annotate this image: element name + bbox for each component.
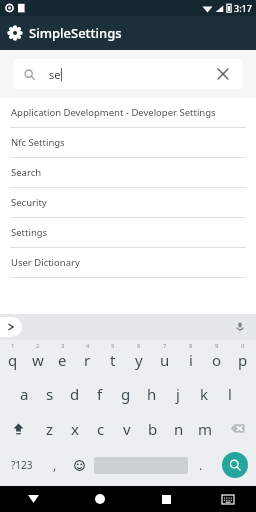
- button[interactable]: Search: [213, 446, 256, 484]
- button[interactable]: j: [165, 376, 191, 411]
- staticText: 5: [111, 342, 115, 350]
- staticText: 0: [241, 342, 245, 350]
- staticText: 4: [86, 342, 90, 350]
- button[interactable]: l: [217, 376, 243, 411]
- staticText: p: [238, 350, 248, 370]
- staticText: u: [160, 350, 170, 370]
- button[interactable]: Home: [67, 486, 133, 512]
- other: Search: [24, 69, 35, 80]
- button[interactable]: Shift: [0, 411, 37, 446]
- staticText: j: [176, 384, 180, 404]
- button[interactable]: User Dictionary: [0, 248, 256, 277]
- button[interactable]: Nfc Settings: [0, 128, 256, 157]
- staticText: 3: [61, 342, 65, 350]
- button[interactable]: Recents: [133, 486, 199, 512]
- staticText: 6: [137, 342, 141, 350]
- button[interactable]: 2: [25, 340, 50, 376]
- staticText: 8: [189, 342, 193, 350]
- button[interactable]: 1: [0, 340, 25, 376]
- staticText: e: [58, 350, 67, 370]
- button[interactable]: [92, 446, 189, 484]
- staticText: 1: [11, 342, 15, 350]
- button[interactable]: Security: [0, 188, 256, 217]
- button[interactable]: 0: [230, 340, 256, 376]
- button[interactable]: d: [62, 376, 87, 411]
- button[interactable]: Search: [14, 59, 242, 89]
- staticText: Security: [11, 196, 47, 209]
- staticText: v: [123, 419, 131, 439]
- button[interactable]: f: [87, 376, 113, 411]
- staticText: r: [84, 350, 91, 370]
- button[interactable]: 6: [126, 340, 152, 376]
- button[interactable]: z: [37, 411, 62, 446]
- staticText: x: [71, 419, 79, 439]
- button[interactable]: Switch keyboard: [199, 486, 256, 512]
- button[interactable]: Settings: [0, 218, 256, 247]
- staticText: q: [8, 350, 18, 370]
- staticText: g: [121, 384, 131, 404]
- staticText: se: [49, 67, 61, 82]
- staticText: f: [97, 384, 103, 404]
- staticText: i: [189, 350, 193, 370]
- button[interactable]: Backspace: [218, 411, 256, 446]
- staticText: w: [32, 350, 44, 370]
- staticText: k: [200, 384, 209, 404]
- button[interactable]: 7: [152, 340, 178, 376]
- button[interactable]: g: [113, 376, 139, 411]
- button[interactable]: Search: [0, 158, 256, 187]
- staticText: m: [198, 419, 213, 439]
- staticText: .: [199, 457, 203, 473]
- staticText: Application Development - Developer Sett…: [11, 106, 216, 119]
- other: App icon: [8, 26, 22, 40]
- button[interactable]: Voice input: [232, 319, 248, 335]
- button[interactable]: ,: [43, 446, 66, 484]
- button[interactable]: Application Development - Developer Sett…: [0, 98, 256, 127]
- button[interactable]: Clear: [214, 65, 232, 83]
- staticText: d: [70, 384, 80, 404]
- staticText: a: [20, 384, 29, 404]
- staticText: b: [148, 419, 158, 439]
- staticText: 9: [215, 342, 219, 350]
- staticText: Search: [11, 166, 42, 179]
- button[interactable]: b: [140, 411, 166, 446]
- staticText: ,: [53, 457, 57, 473]
- staticText: t: [110, 350, 116, 370]
- button[interactable]: s: [37, 376, 62, 411]
- button[interactable]: ?123: [0, 446, 43, 484]
- button[interactable]: 4: [75, 340, 100, 376]
- button[interactable]: .: [189, 446, 213, 484]
- button[interactable]: 5: [100, 340, 126, 376]
- button[interactable]: c: [88, 411, 114, 446]
- staticText: c: [97, 419, 105, 439]
- staticText: n: [174, 419, 184, 439]
- staticText: 2: [36, 342, 40, 350]
- button[interactable]: Emoji: [66, 446, 92, 484]
- staticText: s: [46, 384, 54, 404]
- staticText: SimpleSettings: [29, 24, 122, 42]
- staticText: User Dictionary: [11, 256, 80, 269]
- staticText: Nfc Settings: [11, 136, 65, 149]
- staticText: ?123: [11, 458, 33, 472]
- button[interactable]: Back: [0, 486, 67, 512]
- staticText: h: [147, 384, 157, 404]
- button[interactable]: m: [192, 411, 218, 446]
- button[interactable]: n: [166, 411, 192, 446]
- button[interactable]: App icon: [0, 16, 256, 50]
- staticText: z: [46, 419, 54, 439]
- button[interactable]: a: [12, 376, 37, 411]
- button[interactable]: 8: [178, 340, 204, 376]
- button[interactable]: h: [139, 376, 165, 411]
- button[interactable]: 3: [50, 340, 75, 376]
- staticText: y: [135, 350, 143, 370]
- button[interactable]: v: [114, 411, 140, 446]
- button[interactable]: 9: [204, 340, 230, 376]
- button[interactable]: x: [62, 411, 88, 446]
- button[interactable]: k: [191, 376, 217, 411]
- staticText: o: [212, 350, 222, 370]
- button[interactable]: More suggestions: [0, 317, 22, 337]
- staticText: 7: [163, 342, 167, 350]
- staticText: 3:17: [234, 2, 252, 14]
- staticText: l: [228, 384, 232, 404]
- staticText: Settings: [11, 226, 48, 239]
